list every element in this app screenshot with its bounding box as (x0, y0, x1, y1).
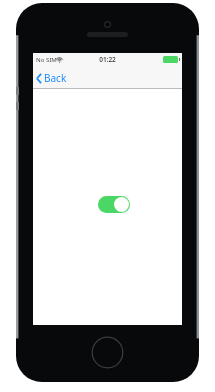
button[interactable]: Back (33, 67, 74, 89)
button[interactable]: Toggle switch (98, 196, 130, 213)
button[interactable]: Home (91, 336, 124, 369)
staticText: Back (44, 71, 67, 85)
staticText: No SIM (36, 56, 57, 64)
staticText: 01:22 (99, 55, 116, 64)
